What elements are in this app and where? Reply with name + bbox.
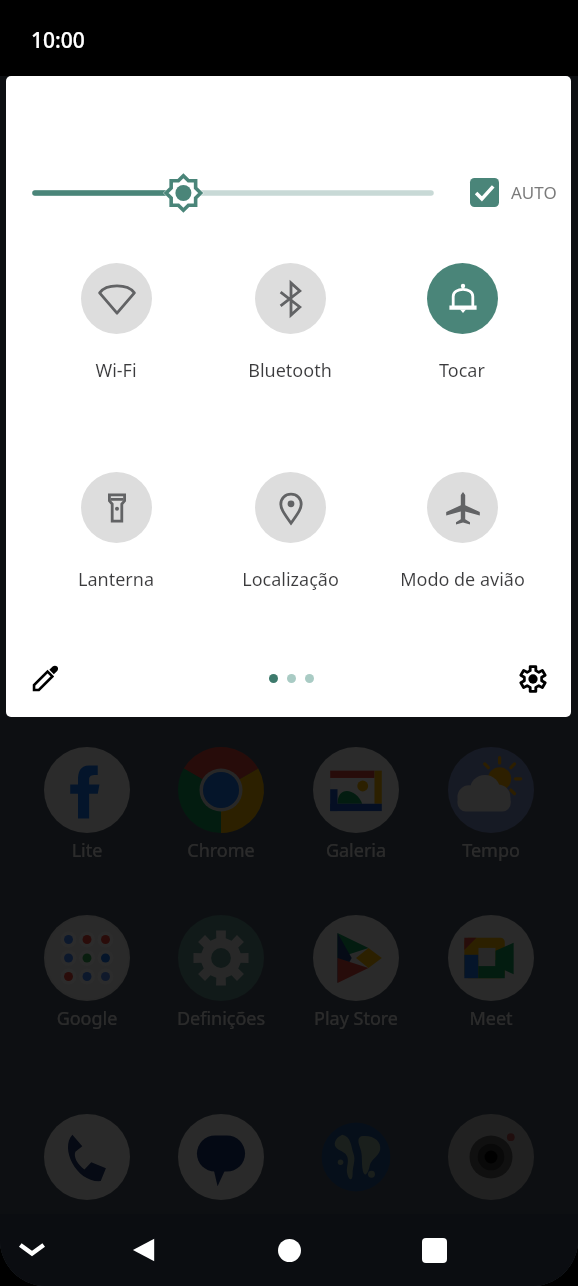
staticText: Tempo [411, 838, 571, 863]
button[interactable]: Google [44, 915, 130, 1001]
button[interactable]: Modo de avião [374, 472, 550, 592]
staticText: Lite [7, 838, 167, 863]
staticText: Localização [242, 567, 339, 592]
staticText: Galeria [276, 838, 436, 863]
button[interactable]: messages [178, 1114, 264, 1200]
button[interactable]: Meet [448, 915, 534, 1001]
button[interactable]: Galeria [313, 747, 399, 833]
button[interactable]: browser [313, 1114, 399, 1200]
staticText: Lanterna [78, 567, 154, 592]
button[interactable]: Chrome [178, 747, 264, 833]
staticText: Wi-Fi [95, 358, 137, 383]
staticText: Bluetooth [248, 358, 332, 383]
staticText: Definições [141, 1006, 301, 1031]
button[interactable]: phone [44, 1114, 130, 1200]
button[interactable]: Tempo [448, 747, 534, 833]
button[interactable]: Tocar [374, 263, 550, 383]
staticText: Modo de avião [400, 567, 525, 592]
button[interactable]: Lanterna [28, 472, 204, 592]
staticText: Chrome [141, 838, 301, 863]
button[interactable]: Brightness [23, 169, 448, 217]
button[interactable]: AUTO [470, 170, 557, 214]
button[interactable]: Definições [178, 915, 264, 1001]
button[interactable]: Recents [406, 1222, 462, 1278]
staticText: AUTO [511, 181, 557, 204]
button[interactable]: camera [448, 1114, 534, 1200]
button[interactable]: Home [261, 1222, 317, 1278]
button[interactable]: Lite [44, 747, 130, 833]
button[interactable]: Bluetooth [202, 263, 378, 383]
button[interactable]: Play Store [313, 915, 399, 1001]
button[interactable]: Edit [17, 651, 73, 707]
button[interactable]: Localização [202, 472, 378, 592]
staticText: Play Store [276, 1006, 436, 1031]
button[interactable]: Back [115, 1222, 171, 1278]
staticText: Google [7, 1006, 167, 1031]
staticText: Tocar [439, 358, 485, 383]
button[interactable]: Wi-Fi [28, 263, 204, 383]
button[interactable]: Collapse [4, 1222, 60, 1278]
button[interactable]: Settings [505, 651, 561, 707]
staticText: 10:00 [31, 26, 85, 55]
staticText: Meet [411, 1006, 571, 1031]
